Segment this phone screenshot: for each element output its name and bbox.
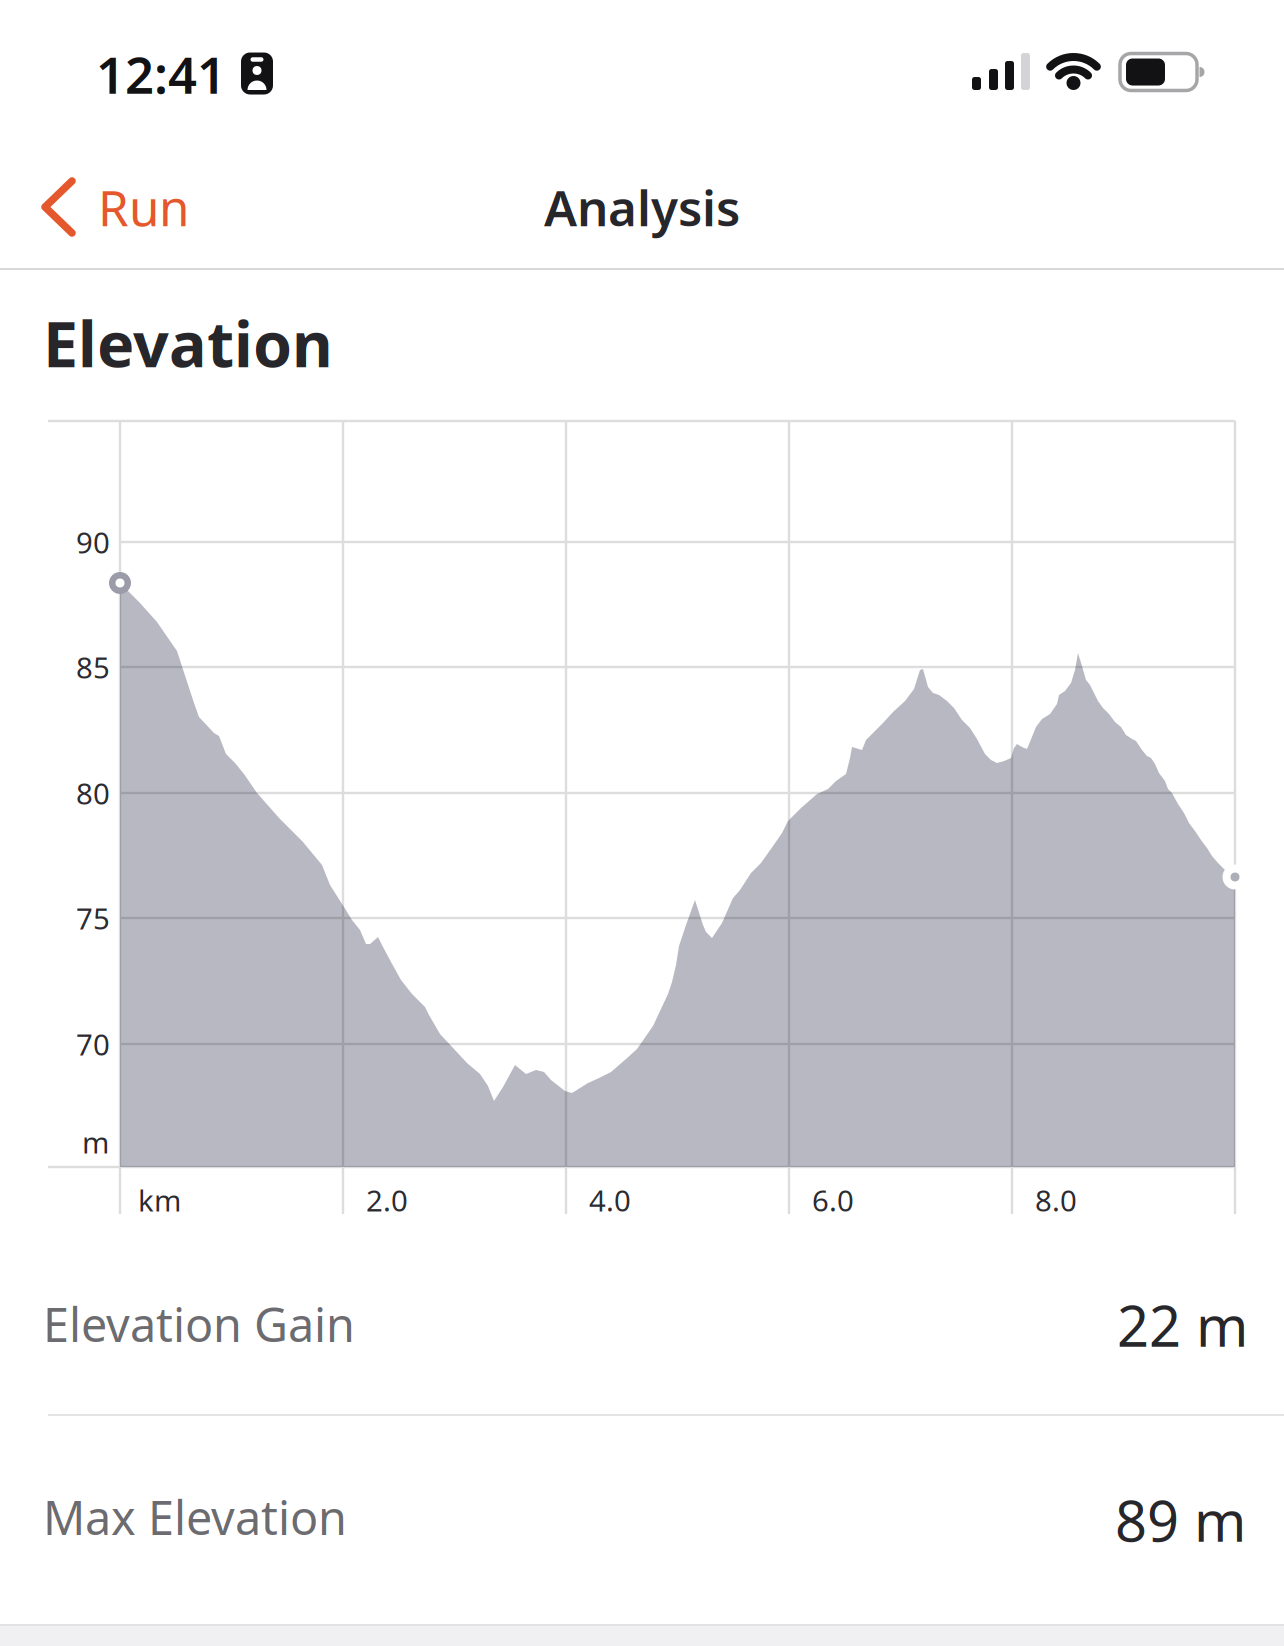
staticText: 85 bbox=[76, 647, 110, 686]
staticText: 12:41 bbox=[96, 40, 226, 108]
staticText: Max Elevation bbox=[43, 1486, 347, 1548]
staticText: 2.0 bbox=[366, 1180, 408, 1219]
staticText: Elevation bbox=[43, 301, 333, 385]
staticText: 6.0 bbox=[812, 1180, 854, 1219]
staticText: 70 bbox=[76, 1024, 110, 1063]
button[interactable]: Run bbox=[40, 174, 189, 240]
staticText: 22 m bbox=[1117, 1288, 1248, 1362]
staticText: 4.0 bbox=[589, 1180, 631, 1219]
staticText: Run bbox=[98, 174, 189, 240]
staticText: 89 m bbox=[1115, 1483, 1246, 1557]
staticText: 90 bbox=[76, 522, 110, 561]
staticText: 80 bbox=[76, 773, 110, 812]
staticText: 75 bbox=[76, 898, 110, 937]
staticText: Analysis bbox=[544, 174, 740, 240]
staticText: km bbox=[138, 1180, 181, 1219]
staticText: Elevation Gain bbox=[43, 1293, 355, 1355]
staticText: 8.0 bbox=[1035, 1180, 1077, 1219]
staticText: m bbox=[82, 1122, 109, 1161]
